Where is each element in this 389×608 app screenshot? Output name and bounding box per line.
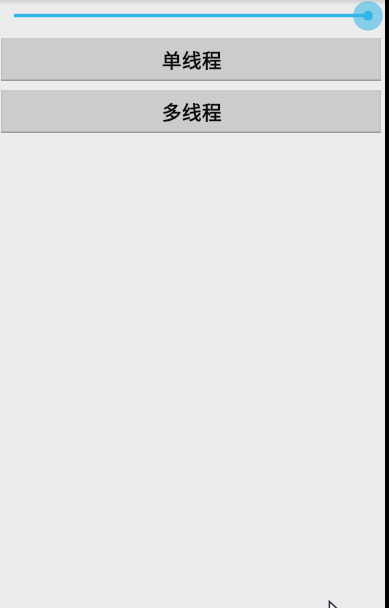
button[interactable]: 多线程 — [1, 90, 381, 133]
staticText: 单线程 — [162, 47, 221, 72]
staticText: 多线程 — [162, 99, 221, 124]
button[interactable]: Download progress seek bar — [0, 0, 385, 31]
button[interactable]: 单线程 — [1, 38, 381, 81]
